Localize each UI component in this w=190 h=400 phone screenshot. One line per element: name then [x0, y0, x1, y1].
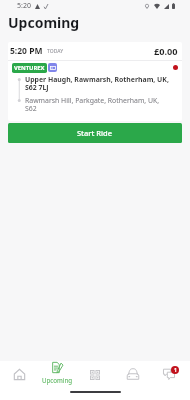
- button[interactable]: 5:20 PM: [8, 42, 182, 121]
- button[interactable]: Upcoming: [38, 361, 76, 385]
- staticText: VENTUREX: [14, 64, 45, 72]
- button[interactable]: Scan QR code: [76, 361, 114, 385]
- staticText: 1: [174, 367, 177, 374]
- button[interactable]: Home: [0, 361, 38, 385]
- staticText: Start Ride: [77, 128, 113, 138]
- staticText: 5:20 PM: [10, 45, 43, 57]
- button[interactable]: Vehicle: [114, 361, 152, 385]
- staticText: £0.00: [154, 45, 178, 58]
- staticText: TODAY: [47, 48, 64, 55]
- staticText: Upcoming: [8, 13, 80, 32]
- staticText: 5:20: [17, 1, 31, 11]
- button[interactable]: Messages: [152, 361, 190, 385]
- button[interactable]: Start Ride: [8, 123, 182, 143]
- staticText: Rawmarsh Hill, Parkgate, Rotherham, UK, …: [25, 96, 170, 113]
- staticText: Upcoming: [42, 376, 73, 384]
- staticText: Upper Haugh, Rawmarsh, Rotherham, UK, S6…: [25, 75, 170, 92]
